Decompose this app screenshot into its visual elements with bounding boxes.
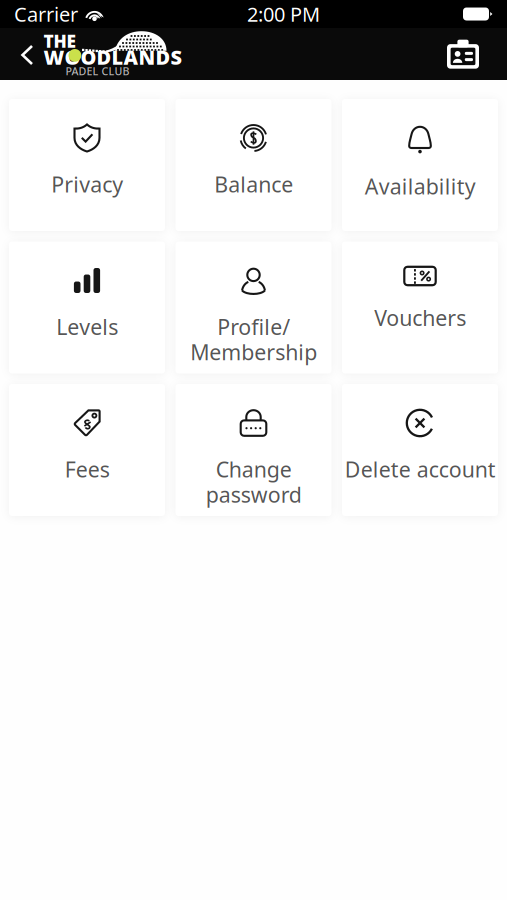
staticText: 2:00 PM — [247, 1, 320, 27]
button[interactable]: Change password — [175, 384, 331, 516]
button[interactable]: Delete account — [342, 384, 498, 516]
staticText: PADEL CLUB — [65, 64, 129, 78]
staticText: Levels — [56, 312, 118, 341]
staticText: Profile/ Membership — [190, 312, 317, 366]
button[interactable]: Availability — [342, 99, 498, 231]
button[interactable]: Profile/ Membership — [175, 241, 331, 373]
staticText: Carrier — [14, 1, 78, 27]
staticText: Vouchers — [374, 303, 466, 332]
staticText: THE — [43, 29, 76, 52]
staticText: Fees — [64, 455, 109, 483]
staticText: WOODLANDS — [43, 44, 182, 70]
button[interactable]: Privacy — [9, 99, 165, 231]
button[interactable]: Levels — [9, 241, 165, 373]
staticText: Privacy — [51, 170, 123, 198]
button[interactable]: Fees — [9, 384, 165, 516]
button[interactable]: Back — [0, 31, 45, 77]
staticText: Availability — [364, 172, 475, 200]
staticText: Delete account — [344, 455, 495, 483]
button[interactable]: Membership card — [432, 28, 507, 79]
button[interactable]: Vouchers — [342, 241, 498, 373]
button[interactable]: Balance — [175, 99, 331, 231]
staticText: Change password — [205, 455, 301, 509]
staticText: Balance — [214, 170, 293, 198]
